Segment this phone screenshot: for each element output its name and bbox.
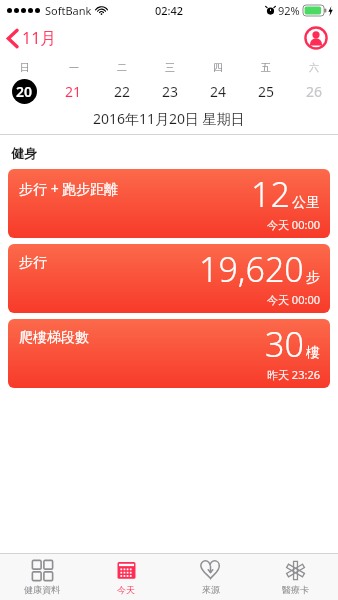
staticText: 24	[210, 82, 227, 101]
staticText: 三	[165, 61, 175, 74]
staticText: 23	[162, 82, 179, 101]
staticText: 92%	[278, 3, 300, 18]
staticText: 30	[265, 321, 304, 367]
button[interactable]: 22	[98, 78, 146, 104]
button[interactable]: 21	[49, 78, 98, 104]
staticText: 11月	[22, 27, 57, 49]
button[interactable]: 健康資料	[0, 554, 84, 600]
staticText: 02:42	[155, 3, 184, 18]
button[interactable]: Profile	[302, 24, 330, 52]
staticText: 22	[114, 82, 131, 101]
button[interactable]: 20	[0, 78, 49, 104]
staticText: 來源	[202, 584, 220, 595]
button[interactable]: 24	[194, 78, 242, 104]
staticText: 25	[258, 82, 275, 101]
staticText: 日	[20, 61, 30, 74]
button[interactable]: 步行 + 跑步距離	[8, 169, 330, 238]
staticText: 今天 00:00	[267, 292, 320, 307]
staticText: 步	[306, 269, 320, 287]
staticText: 步行 + 跑步距離	[19, 179, 119, 198]
button[interactable]: 來源	[168, 554, 253, 600]
staticText: 六	[309, 61, 319, 74]
staticText: 二	[117, 61, 127, 74]
staticText: 21	[65, 82, 82, 101]
staticText: 爬樓梯段數	[19, 329, 89, 347]
button[interactable]: 爬樓梯段數	[8, 319, 330, 388]
button[interactable]: 26	[290, 78, 338, 104]
staticText: SoftBank	[45, 3, 92, 18]
staticText: 昨天 23:26	[267, 367, 320, 382]
staticText: 19,620	[199, 246, 304, 292]
staticText: 醫療卡	[282, 584, 309, 595]
button[interactable]: 25	[242, 78, 290, 104]
staticText: 樓	[306, 344, 320, 362]
staticText: 26	[306, 82, 323, 101]
staticText: 五	[261, 61, 271, 74]
staticText: 一	[69, 61, 79, 74]
staticText: 2016年11月20日 星期日	[93, 109, 245, 128]
button[interactable]: 今天	[84, 554, 168, 600]
staticText: 健康資料	[24, 584, 60, 595]
staticText: 今天	[117, 584, 135, 595]
staticText: 12	[251, 171, 290, 217]
staticText: 步行	[19, 254, 47, 272]
button[interactable]: 醫療卡	[253, 554, 338, 600]
staticText: 20	[16, 82, 33, 101]
staticText: 今天 00:00	[267, 217, 320, 232]
button[interactable]: 11月	[0, 23, 65, 53]
button[interactable]: 步行	[8, 244, 330, 313]
staticText: 公里	[292, 194, 320, 212]
staticText: 健身	[11, 145, 37, 161]
button[interactable]: 23	[146, 78, 194, 104]
staticText: 四	[213, 61, 223, 74]
